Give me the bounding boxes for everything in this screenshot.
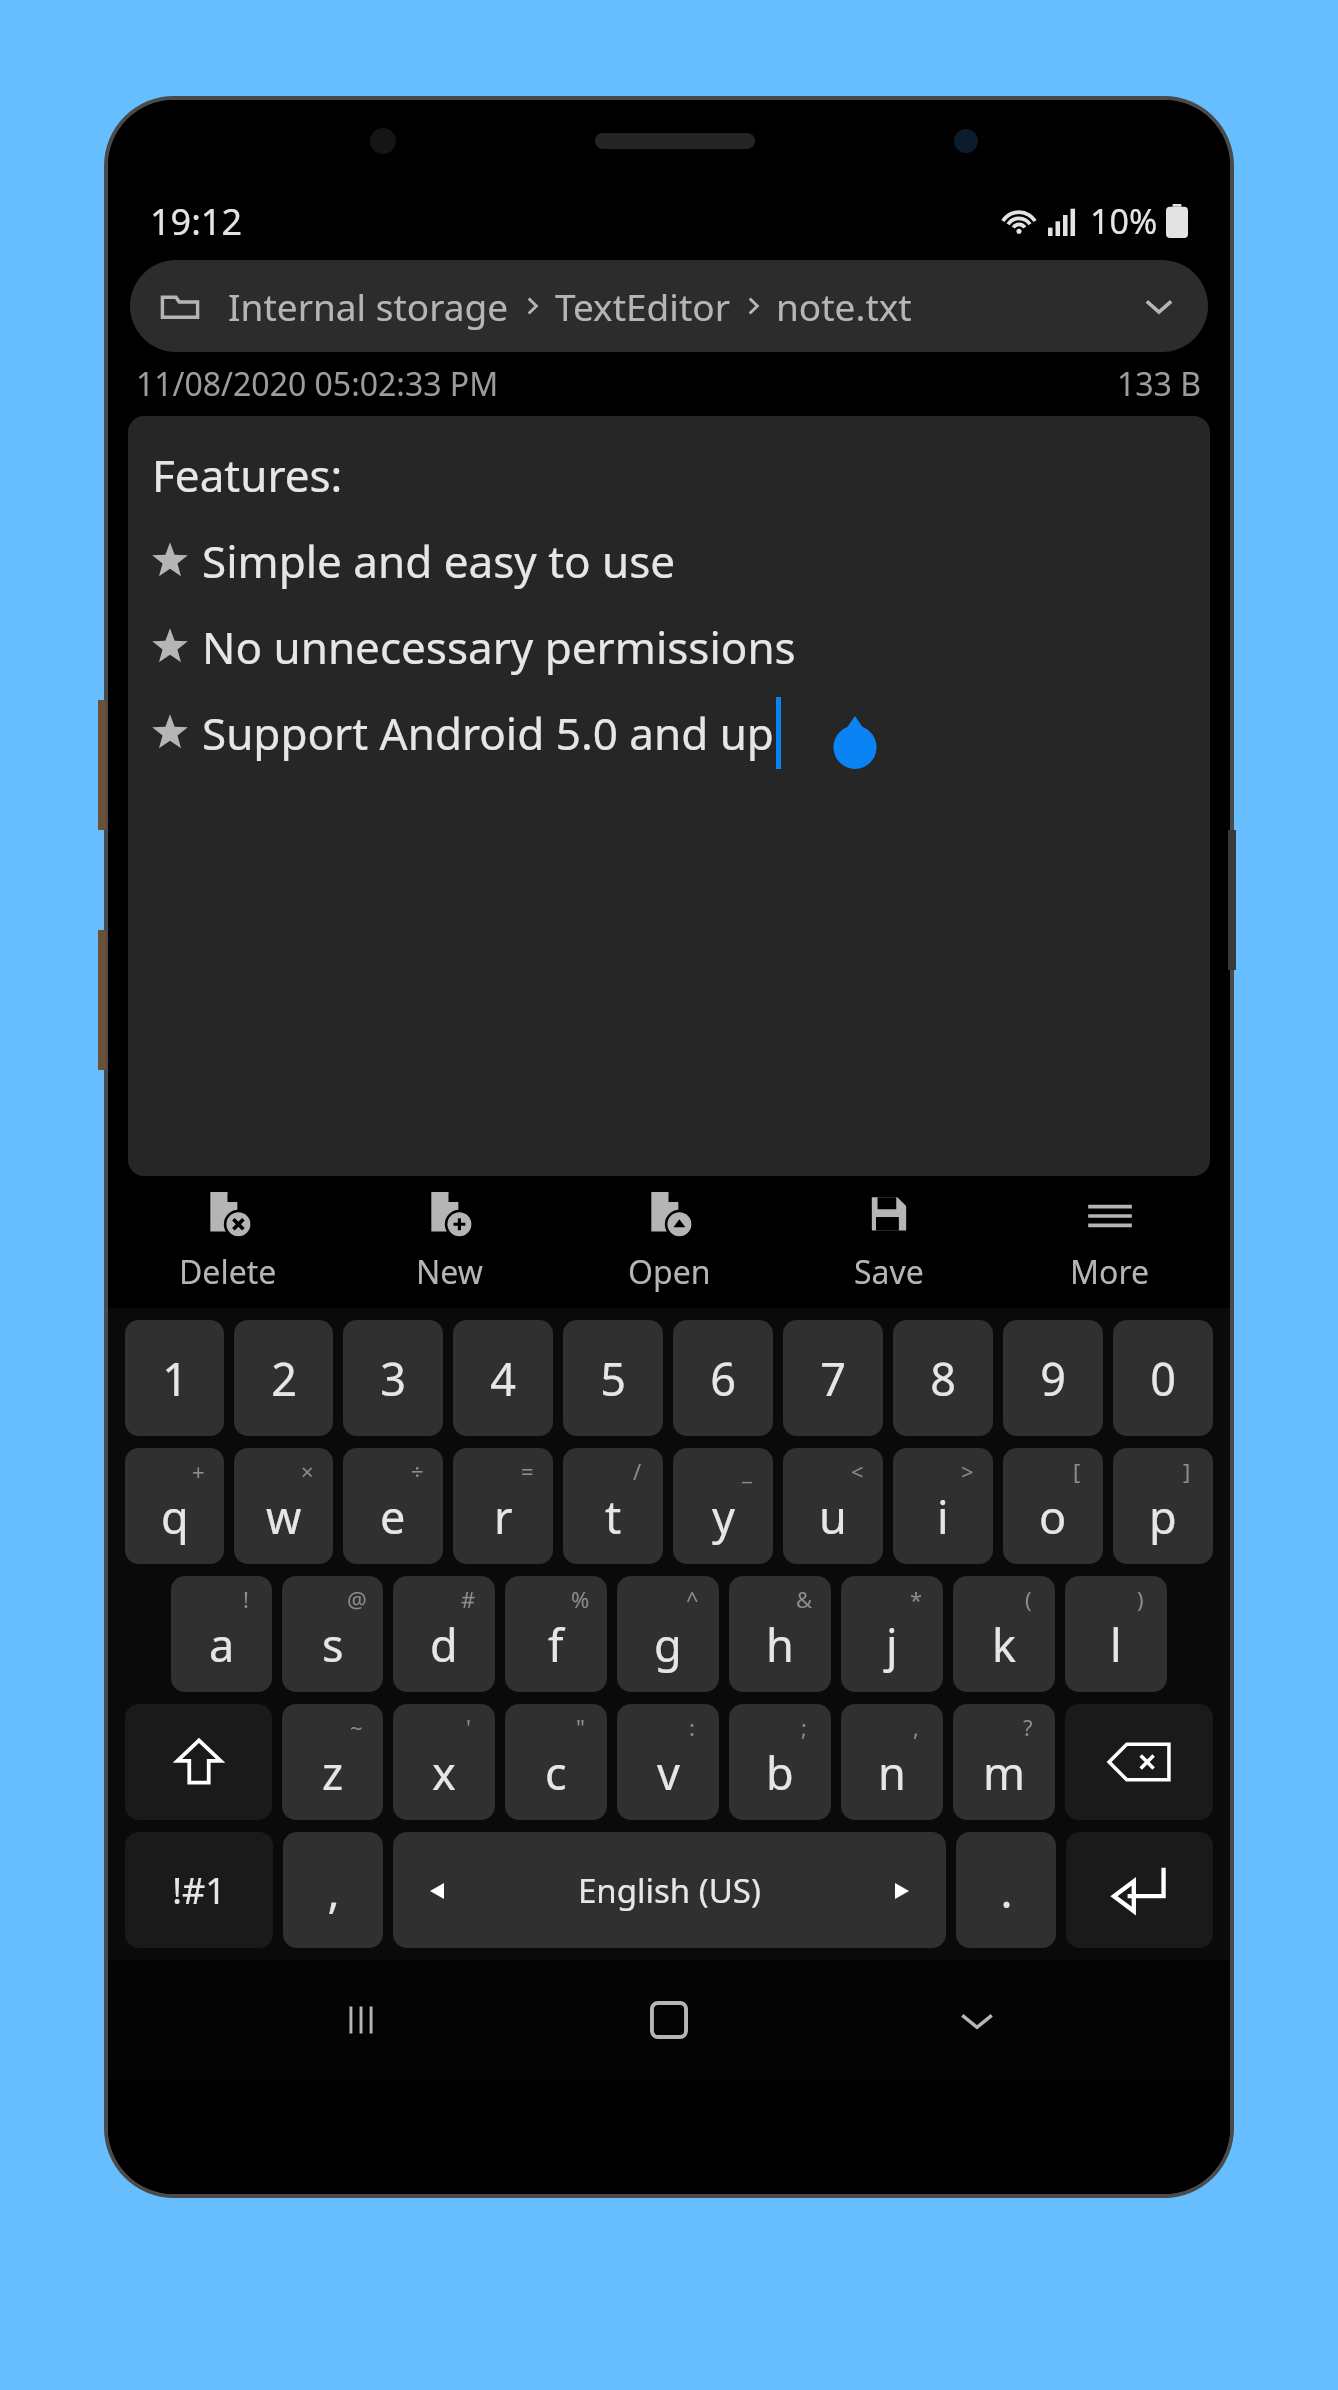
button[interactable]: Open bbox=[569, 1176, 769, 1308]
staticText: 8 bbox=[930, 1348, 956, 1409]
staticText: TextEditor bbox=[555, 281, 730, 331]
button[interactable]: [ bbox=[1003, 1448, 1103, 1564]
button[interactable]: ^ bbox=[617, 1576, 719, 1692]
staticText: s bbox=[322, 1614, 344, 1675]
staticText: n bbox=[878, 1742, 906, 1803]
button[interactable]: # bbox=[393, 1576, 495, 1692]
button[interactable]: % bbox=[505, 1576, 607, 1692]
staticText: Save bbox=[854, 1250, 924, 1294]
staticText: m bbox=[983, 1742, 1026, 1803]
staticText: Features: bbox=[152, 445, 343, 505]
button[interactable]: ! bbox=[171, 1576, 272, 1692]
button[interactable]: 7 bbox=[783, 1320, 883, 1436]
staticText: e bbox=[380, 1486, 406, 1547]
staticText: 19:12 bbox=[150, 197, 243, 246]
staticText: + bbox=[192, 1456, 205, 1486]
button[interactable]: 9 bbox=[1003, 1320, 1103, 1436]
button[interactable]: Expand path bbox=[1132, 279, 1186, 333]
staticText: , bbox=[327, 1860, 340, 1921]
staticText: 1 bbox=[162, 1348, 188, 1409]
button[interactable]: > bbox=[893, 1448, 993, 1564]
button[interactable]: ENTER bbox=[1066, 1832, 1213, 1948]
staticText: g bbox=[654, 1614, 682, 1675]
button[interactable]: 1 bbox=[125, 1320, 224, 1436]
staticText: New bbox=[416, 1250, 483, 1294]
button[interactable]: !#1 bbox=[125, 1832, 273, 1948]
staticText: ' bbox=[466, 1712, 471, 1742]
staticText: 9 bbox=[1040, 1348, 1066, 1409]
button[interactable]: Internal storage bbox=[130, 260, 1208, 352]
button[interactable]: 2 bbox=[234, 1320, 333, 1436]
button[interactable]: ÷ bbox=[343, 1448, 443, 1564]
button[interactable]: ? bbox=[953, 1704, 1055, 1820]
button[interactable]: / bbox=[563, 1448, 663, 1564]
button[interactable]: English (US) bbox=[393, 1832, 946, 1948]
button[interactable]: New bbox=[349, 1176, 549, 1308]
button[interactable]: " bbox=[505, 1704, 607, 1820]
button[interactable]: SHIFT bbox=[125, 1704, 272, 1820]
button[interactable]: Recents bbox=[306, 1965, 416, 2075]
staticText: r bbox=[494, 1486, 513, 1547]
button[interactable]: < bbox=[783, 1448, 883, 1564]
button[interactable]: 0 bbox=[1113, 1320, 1213, 1436]
staticText: v bbox=[657, 1742, 680, 1803]
staticText: 7 bbox=[820, 1348, 846, 1409]
button[interactable]: Save bbox=[789, 1176, 989, 1308]
button[interactable]: @ bbox=[282, 1576, 383, 1692]
staticText: 11/08/2020 05:02:33 PM bbox=[136, 362, 499, 406]
staticText: i bbox=[937, 1486, 949, 1547]
button[interactable]: , bbox=[841, 1704, 943, 1820]
staticText: 3 bbox=[380, 1348, 406, 1409]
button[interactable]: * bbox=[841, 1576, 943, 1692]
staticText: & bbox=[796, 1584, 813, 1614]
staticText: × bbox=[301, 1456, 314, 1486]
button[interactable]: × bbox=[234, 1448, 333, 1564]
staticText: ÷ bbox=[411, 1456, 424, 1486]
button[interactable]: 8 bbox=[893, 1320, 993, 1436]
button[interactable]: 6 bbox=[673, 1320, 773, 1436]
button[interactable]: 5 bbox=[563, 1320, 663, 1436]
button[interactable]: : bbox=[617, 1704, 719, 1820]
staticText: h bbox=[766, 1614, 794, 1675]
staticText: Open bbox=[628, 1250, 711, 1294]
staticText: c bbox=[545, 1742, 567, 1803]
button[interactable]: & bbox=[729, 1576, 831, 1692]
button[interactable]: + bbox=[125, 1448, 224, 1564]
button[interactable]: ' bbox=[393, 1704, 495, 1820]
button[interactable]: . bbox=[956, 1832, 1056, 1948]
staticText: % bbox=[571, 1584, 590, 1614]
staticText: Internal storage bbox=[228, 281, 509, 331]
staticText: ? bbox=[1023, 1712, 1033, 1742]
staticText: f bbox=[548, 1614, 564, 1675]
button[interactable]: 3 bbox=[343, 1320, 443, 1436]
button[interactable]: Home bbox=[614, 1965, 724, 2075]
staticText: o bbox=[1039, 1486, 1067, 1547]
staticText: ] bbox=[1183, 1456, 1191, 1486]
button[interactable]: = bbox=[453, 1448, 553, 1564]
button[interactable]: 4 bbox=[453, 1320, 553, 1436]
button[interactable]: , bbox=[283, 1832, 383, 1948]
staticText: k bbox=[992, 1614, 1017, 1675]
staticText: ! bbox=[243, 1584, 249, 1614]
button[interactable]: Delete bbox=[128, 1176, 328, 1308]
staticText: . bbox=[1000, 1860, 1013, 1921]
button[interactable]: ] bbox=[1113, 1448, 1213, 1564]
button[interactable]: ; bbox=[729, 1704, 831, 1820]
button[interactable]: ~ bbox=[282, 1704, 383, 1820]
staticText: No unnecessary permissions bbox=[202, 617, 796, 677]
staticText: " bbox=[576, 1712, 585, 1742]
staticText: [ bbox=[1073, 1456, 1081, 1486]
button[interactable]: Features: bbox=[128, 416, 1210, 1176]
button[interactable]: _ bbox=[673, 1448, 773, 1564]
button[interactable]: ) bbox=[1065, 1576, 1167, 1692]
staticText: Simple and easy to use bbox=[202, 531, 676, 591]
button[interactable]: More bbox=[1010, 1176, 1210, 1308]
button[interactable]: Back bbox=[922, 1965, 1032, 2075]
button[interactable]: BACKSPACE bbox=[1065, 1704, 1213, 1820]
staticText: t bbox=[605, 1486, 622, 1547]
staticText: 4 bbox=[490, 1348, 516, 1409]
staticText: j bbox=[886, 1614, 898, 1675]
button[interactable]: ( bbox=[953, 1576, 1055, 1692]
staticText: !#1 bbox=[172, 1866, 226, 1915]
staticText: 0 bbox=[1150, 1348, 1176, 1409]
